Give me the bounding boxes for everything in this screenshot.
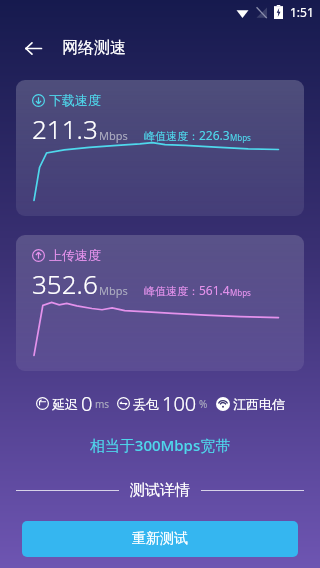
staticText: 1:51 [290,4,314,20]
staticText: 测试详情 [130,481,190,500]
staticText: 352.6 [32,266,98,301]
staticText: % [199,397,208,411]
staticText: 重新测试 [132,530,188,548]
staticText: 下载速度 [49,92,101,108]
button[interactable]: 下载速度 [16,80,304,216]
staticText: 延迟 [52,396,78,412]
staticText: 0 [81,390,93,417]
staticText: 561.4 [199,282,230,298]
staticText: Mbps [230,132,251,143]
staticText: 峰值速度： [144,129,199,143]
staticText: Mbps [99,128,128,143]
staticText: 100 [162,390,197,417]
staticText: Mbps [99,283,128,298]
staticText: 211.3 [32,111,98,146]
staticText: 网络测速 [62,38,126,58]
staticText: 峰值速度： [144,284,199,298]
staticText: ms [95,397,110,411]
staticText: 江西电信 [233,396,285,412]
button[interactable]: 上传速度 [16,235,304,371]
staticText: Mbps [230,287,251,298]
button[interactable]: 重新测试 [22,521,298,557]
staticText: 丢包 [133,396,159,412]
button[interactable]: Back [14,29,52,67]
staticText: 相当于300Mbps宽带 [0,435,320,455]
staticText: 226.3 [199,127,230,143]
staticText: 上传速度 [49,247,101,263]
